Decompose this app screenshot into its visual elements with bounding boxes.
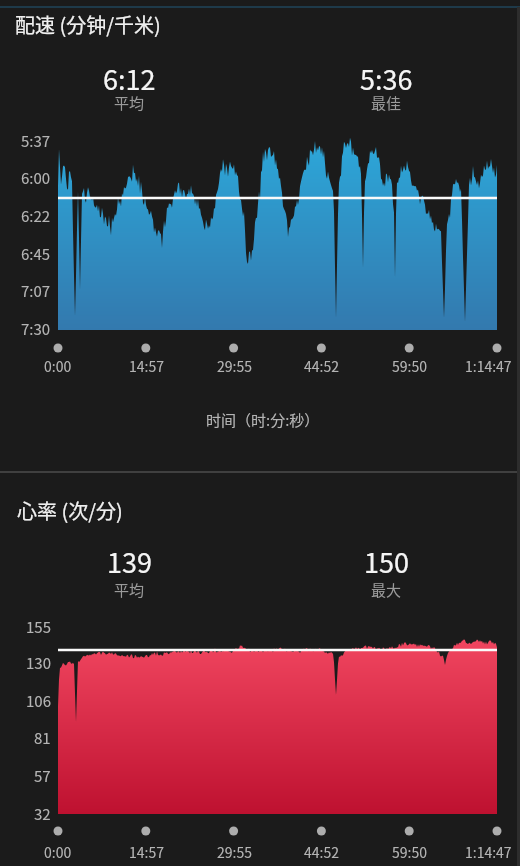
staticText: 最大 <box>371 579 402 601</box>
staticText: 32 <box>34 803 51 825</box>
staticText: 150 <box>364 542 409 574</box>
staticText: 时间（时:分:秒） <box>206 409 320 431</box>
staticText: 7:07 <box>21 280 51 302</box>
staticText: 14:57 <box>129 842 164 862</box>
staticText: 平均 <box>114 92 145 114</box>
staticText: 1:14:47 <box>465 356 512 376</box>
staticText: 6:45 <box>21 243 51 265</box>
staticText: 29:55 <box>217 842 252 862</box>
staticText: 57 <box>34 765 51 787</box>
staticText: 59:50 <box>392 842 427 862</box>
staticText: 最佳 <box>371 92 402 114</box>
staticText: 130 <box>26 652 51 674</box>
staticText: 0:00 <box>44 356 72 376</box>
staticText: 1:14:47 <box>465 842 512 862</box>
staticText: 44:52 <box>304 842 339 862</box>
staticText: 心率 (次/分) <box>17 496 123 525</box>
staticText: 0:00 <box>44 842 72 862</box>
staticText: 59:50 <box>392 356 427 376</box>
staticText: 29:55 <box>217 356 252 376</box>
staticText: 6:12 <box>103 59 156 91</box>
staticText: 配速 (分钟/千米) <box>15 10 161 39</box>
staticText: 5:36 <box>360 59 413 91</box>
staticText: 139 <box>107 542 152 574</box>
staticText: 44:52 <box>304 356 339 376</box>
staticText: 6:00 <box>21 167 51 189</box>
staticText: 平均 <box>114 579 145 601</box>
staticText: 6:22 <box>21 205 51 227</box>
staticText: 5:37 <box>21 130 51 152</box>
staticText: 7:30 <box>21 318 51 340</box>
staticText: 106 <box>26 690 51 712</box>
staticText: 14:57 <box>129 356 164 376</box>
staticText: 81 <box>34 727 51 749</box>
staticText: 155 <box>26 616 51 638</box>
